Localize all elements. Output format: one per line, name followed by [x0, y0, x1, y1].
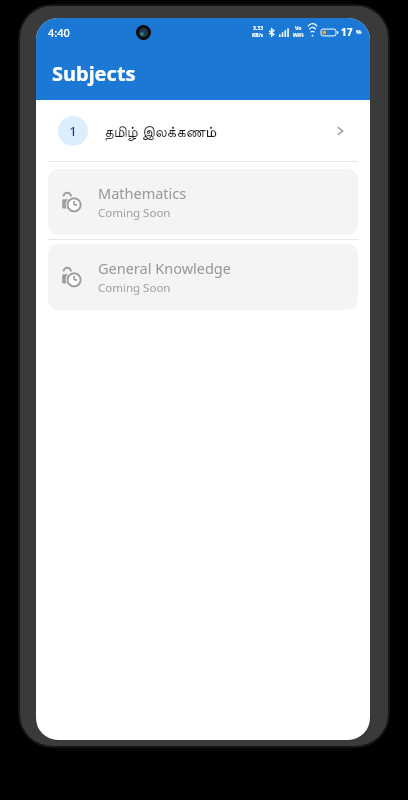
button[interactable]: Locked - coming soon [48, 169, 358, 235]
other: Locked - coming soon [60, 191, 82, 213]
staticText: Coming Soon [98, 205, 171, 221]
button[interactable]: 1 [48, 106, 358, 156]
staticText: Subjects [52, 60, 136, 87]
staticText: KB/s [252, 32, 264, 39]
staticText: 17 [341, 25, 353, 39]
staticText: தமிழ் இலக்கணம் [104, 121, 217, 141]
staticText: 4:40 [48, 25, 70, 40]
staticText: Vo [295, 25, 302, 32]
other: Locked - coming soon [60, 266, 82, 288]
other: Open [332, 123, 348, 139]
button[interactable]: Locked - coming soon [48, 244, 358, 310]
staticText: WiFi [293, 32, 304, 39]
staticText: Mathematics [98, 183, 187, 203]
staticText: 1 [69, 122, 77, 140]
staticText: Coming Soon [98, 280, 171, 296]
staticText: 3.33 [253, 25, 263, 32]
staticText: % [356, 28, 362, 36]
staticText: General Knowledge [98, 258, 231, 278]
